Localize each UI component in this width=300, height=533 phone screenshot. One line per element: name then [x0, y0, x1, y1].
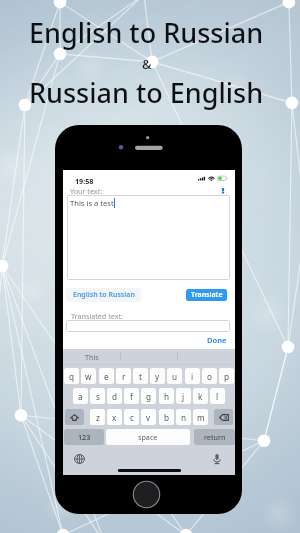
staticText: k	[198, 391, 203, 402]
staticText: f	[130, 391, 133, 402]
staticText: English to Russian	[29, 14, 264, 51]
staticText: 19:58	[75, 176, 94, 186]
button[interactable]: Change keyboard	[72, 452, 86, 466]
button[interactable]: g	[141, 388, 156, 404]
button[interactable]: e	[99, 368, 114, 384]
button[interactable]: return	[194, 429, 235, 445]
button[interactable]: u	[167, 368, 182, 384]
button[interactable]: b	[159, 409, 174, 425]
button[interactable]: Shift	[65, 409, 84, 425]
button[interactable]: i	[185, 368, 200, 384]
button[interactable]: h	[159, 388, 174, 404]
staticText: q	[69, 371, 75, 382]
staticText: Translated text:	[71, 311, 124, 321]
staticText: i	[191, 371, 194, 382]
staticText: m	[197, 412, 205, 423]
staticText: Russian to English	[29, 74, 264, 111]
staticText: r	[122, 371, 126, 382]
button[interactable]: l	[210, 388, 225, 404]
staticText: This is a test	[70, 198, 114, 208]
staticText: Translate	[191, 290, 223, 300]
staticText: j	[182, 391, 185, 402]
button[interactable]: p	[219, 368, 234, 384]
button[interactable]: c	[124, 409, 139, 425]
staticText: o	[207, 371, 212, 382]
staticText: &	[142, 55, 152, 73]
staticText: h	[164, 391, 170, 402]
button[interactable]: m	[193, 409, 208, 425]
staticText: space	[138, 432, 158, 442]
staticText: g	[146, 391, 152, 402]
staticText: b	[164, 412, 170, 423]
button[interactable]: n	[176, 409, 191, 425]
staticText: x	[112, 412, 117, 423]
button[interactable]: This is a test	[67, 195, 230, 280]
button[interactable]: Dictate	[210, 452, 224, 466]
button[interactable]: space	[106, 429, 190, 445]
button[interactable]: z	[90, 409, 105, 425]
button[interactable]: f	[124, 388, 139, 404]
staticText: c	[130, 412, 134, 423]
staticText: u	[172, 371, 178, 382]
staticText: This	[85, 352, 99, 362]
staticText: w	[85, 371, 92, 382]
button[interactable]: More options	[218, 185, 228, 196]
staticText: v	[146, 412, 151, 423]
button[interactable]: Done	[203, 334, 230, 345]
button[interactable]: w	[81, 368, 96, 384]
staticText: l	[216, 391, 219, 402]
button[interactable]: x	[107, 409, 122, 425]
button[interactable]: This	[63, 349, 121, 364]
staticText: z	[96, 412, 100, 423]
staticText: y	[155, 371, 160, 382]
button[interactable]: v	[141, 409, 156, 425]
staticText: d	[112, 391, 118, 402]
button[interactable]: d	[107, 388, 122, 404]
button[interactable]: English to Russian	[66, 288, 141, 302]
button[interactable]: Backspace	[214, 409, 233, 425]
staticText: a	[78, 391, 83, 402]
button[interactable]: o	[202, 368, 217, 384]
staticText: Your text:	[70, 186, 103, 196]
staticText: t	[139, 371, 142, 382]
button[interactable]: j	[176, 388, 191, 404]
staticText: s	[96, 391, 100, 402]
staticText: English to Russian	[73, 290, 135, 300]
button[interactable]: y	[150, 368, 165, 384]
button[interactable]: a	[73, 388, 88, 404]
staticText: return	[204, 432, 226, 442]
button[interactable]: 123	[64, 429, 104, 445]
button[interactable]: r	[116, 368, 131, 384]
staticText: Done	[207, 335, 227, 345]
button[interactable]: k	[193, 388, 208, 404]
staticText: e	[104, 371, 109, 382]
button[interactable]: q	[64, 368, 79, 384]
staticText: n	[181, 412, 187, 423]
staticText: p	[224, 371, 230, 382]
staticText: 123	[78, 432, 91, 442]
button[interactable]: t	[133, 368, 148, 384]
button[interactable]: s	[90, 388, 105, 404]
button[interactable]: Translate	[186, 289, 227, 301]
